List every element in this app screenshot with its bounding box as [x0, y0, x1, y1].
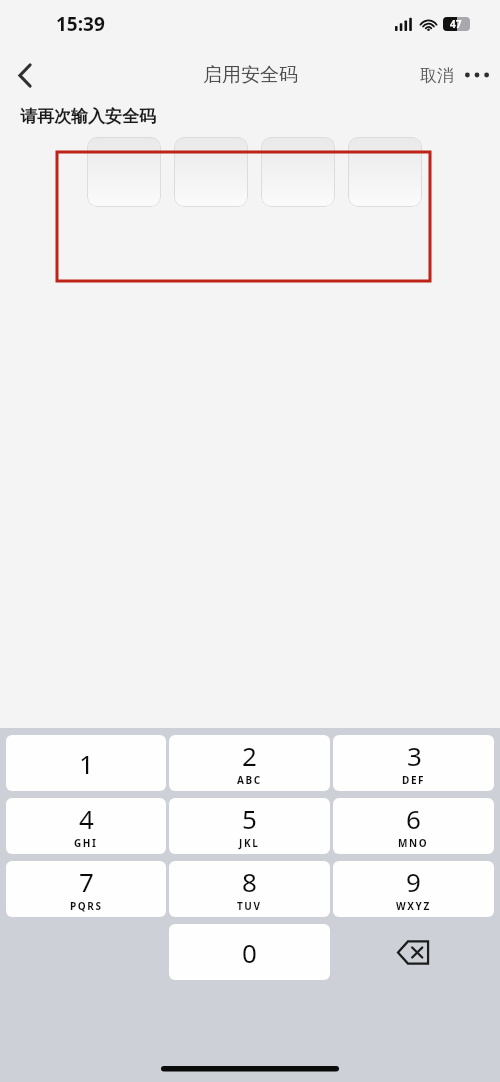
- staticText: 请再次输入安全码: [20, 106, 156, 127]
- button[interactable]: [174, 137, 248, 207]
- button[interactable]: 8: [169, 861, 330, 917]
- staticText: 6: [406, 801, 421, 836]
- button[interactable]: 6: [333, 798, 494, 854]
- staticText: 5: [242, 801, 257, 836]
- staticText: 启用安全码: [203, 63, 298, 87]
- button[interactable]: 7: [6, 861, 166, 917]
- button[interactable]: 1: [6, 735, 166, 791]
- staticText: MNO: [398, 836, 429, 850]
- button[interactable]: 5: [169, 798, 330, 854]
- button[interactable]: 4: [6, 798, 166, 854]
- staticText: WXYZ: [396, 899, 431, 913]
- button[interactable]: 9: [333, 861, 494, 917]
- staticText: TUV: [237, 899, 262, 913]
- button[interactable]: [87, 137, 161, 207]
- button[interactable]: 返回: [0, 52, 50, 98]
- button[interactable]: 2: [169, 735, 330, 791]
- staticText: ABC: [237, 773, 262, 787]
- staticText: 1: [79, 746, 94, 781]
- staticText: 2: [242, 738, 257, 773]
- staticText: 4: [79, 801, 94, 836]
- staticText: GHI: [74, 836, 98, 850]
- staticText: 3: [407, 738, 422, 773]
- staticText: PQRS: [70, 899, 103, 913]
- button[interactable]: [348, 137, 422, 207]
- button[interactable]: 3: [333, 735, 494, 791]
- button[interactable]: 更多: [458, 56, 496, 94]
- staticText: 7: [79, 864, 94, 899]
- staticText: 15:39: [56, 11, 105, 37]
- staticText: 8: [242, 864, 257, 899]
- staticText: DEF: [402, 773, 426, 787]
- button[interactable]: 取消: [416, 57, 458, 94]
- button[interactable]: [261, 137, 335, 207]
- staticText: 取消: [420, 65, 454, 86]
- staticText: 47: [450, 17, 462, 31]
- staticText: 9: [406, 864, 421, 899]
- button[interactable]: 0: [169, 924, 330, 980]
- staticText: JKL: [239, 836, 260, 850]
- button[interactable]: 删除: [333, 924, 494, 980]
- staticText: 0: [242, 935, 257, 970]
